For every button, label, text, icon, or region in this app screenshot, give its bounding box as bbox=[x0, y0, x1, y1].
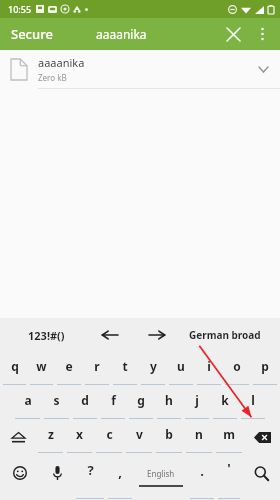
staticText: q bbox=[11, 358, 19, 374]
button[interactable]: Backspace bbox=[244, 420, 280, 454]
button[interactable]: Previous bbox=[94, 320, 124, 350]
staticText: n bbox=[195, 426, 203, 442]
button[interactable]: t bbox=[111, 352, 139, 386]
button[interactable]: Search bbox=[242, 454, 280, 500]
staticText: t bbox=[122, 358, 128, 374]
staticText: i bbox=[207, 358, 211, 374]
staticText: d bbox=[81, 392, 89, 408]
button[interactable]: f bbox=[99, 386, 127, 420]
button[interactable]: h bbox=[155, 386, 183, 420]
staticText: English bbox=[147, 468, 175, 479]
staticText: b bbox=[165, 426, 173, 442]
staticText: p bbox=[261, 358, 269, 374]
button[interactable]: Voice input bbox=[40, 454, 74, 500]
staticText: . bbox=[200, 462, 204, 480]
staticText: j bbox=[195, 392, 199, 408]
staticText: ' bbox=[227, 459, 231, 477]
staticText: w bbox=[36, 358, 47, 374]
button[interactable]: 123!#() bbox=[24, 324, 69, 347]
staticText: k bbox=[221, 392, 229, 408]
staticText: g bbox=[137, 392, 145, 408]
button[interactable]: p bbox=[251, 352, 279, 386]
button[interactable]: j bbox=[183, 386, 211, 420]
button[interactable]: w bbox=[28, 352, 55, 386]
staticText: Secure bbox=[11, 25, 53, 43]
button[interactable]: n bbox=[184, 420, 214, 454]
button[interactable]: d bbox=[71, 386, 99, 420]
button[interactable]: a bbox=[13, 386, 42, 420]
staticText: h bbox=[165, 392, 173, 408]
staticText: z bbox=[48, 426, 54, 442]
button[interactable]: English bbox=[134, 454, 188, 500]
staticText: c bbox=[106, 426, 113, 442]
staticText: , bbox=[118, 463, 122, 481]
button[interactable]: , bbox=[106, 454, 134, 500]
button[interactable]: m bbox=[214, 420, 244, 454]
staticText: aaaanika bbox=[38, 55, 85, 70]
button[interactable]: Shift bbox=[0, 420, 36, 454]
button[interactable]: u bbox=[167, 352, 195, 386]
button[interactable]: z bbox=[36, 420, 65, 454]
button[interactable]: German broad bbox=[185, 324, 265, 346]
button[interactable]: Next bbox=[142, 320, 172, 350]
button[interactable]: s bbox=[42, 386, 71, 420]
staticText: Zero kB bbox=[38, 72, 67, 83]
button[interactable]: r bbox=[83, 352, 111, 386]
button[interactable]: . bbox=[188, 454, 216, 500]
button[interactable]: c bbox=[94, 420, 124, 454]
button[interactable]: g bbox=[127, 386, 155, 420]
button[interactable]: y bbox=[139, 352, 167, 386]
button[interactable]: Expand bbox=[246, 50, 280, 88]
button[interactable]: v bbox=[124, 420, 154, 454]
staticText: u bbox=[177, 358, 185, 374]
staticText: ? bbox=[87, 461, 94, 479]
staticText: o bbox=[233, 358, 241, 374]
button[interactable]: Close bbox=[220, 21, 246, 47]
button[interactable]: e bbox=[55, 352, 83, 386]
button[interactable]: q bbox=[1, 352, 28, 386]
staticText: m bbox=[223, 426, 235, 442]
button[interactable]: l bbox=[239, 386, 267, 420]
staticText: f bbox=[111, 392, 116, 408]
button[interactable]: Emoji bbox=[0, 454, 40, 500]
staticText: y bbox=[150, 358, 157, 374]
staticText: a bbox=[24, 392, 32, 408]
button[interactable]: ? bbox=[74, 454, 106, 500]
button[interactable]: i bbox=[195, 352, 223, 386]
button[interactable]: b bbox=[154, 420, 184, 454]
staticText: 123!#() bbox=[28, 328, 65, 343]
button[interactable]: o bbox=[223, 352, 251, 386]
button[interactable]: k bbox=[211, 386, 239, 420]
staticText: l bbox=[251, 392, 255, 408]
staticText: v bbox=[136, 426, 143, 442]
staticText: German broad bbox=[189, 328, 261, 342]
staticText: e bbox=[65, 358, 73, 374]
staticText: r bbox=[94, 358, 100, 374]
staticText: aaaanika bbox=[96, 26, 147, 42]
button[interactable]: More options bbox=[249, 21, 275, 47]
button[interactable]: x bbox=[65, 420, 94, 454]
staticText: s bbox=[53, 392, 60, 408]
staticText: 10:55 bbox=[8, 3, 32, 15]
button[interactable]: aaaanika bbox=[0, 50, 280, 88]
staticText: x bbox=[76, 426, 83, 442]
button[interactable]: ' bbox=[216, 454, 242, 500]
